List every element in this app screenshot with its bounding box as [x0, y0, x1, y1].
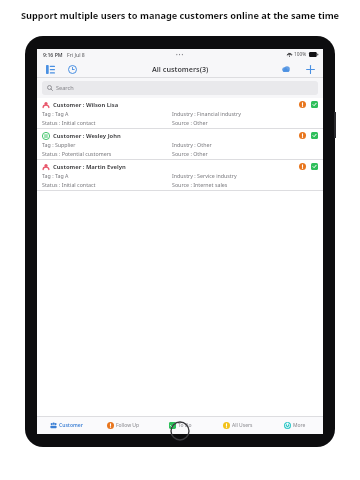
staticText: Customer	[59, 422, 83, 429]
button[interactable]: Done	[311, 101, 318, 108]
staticText: More	[293, 422, 306, 429]
staticText: Status : Potential customers	[42, 150, 112, 157]
staticText: Source : Other	[172, 150, 208, 157]
button[interactable]: Customer : Wilson Lisa	[37, 98, 323, 129]
button[interactable]: Sidebar	[42, 61, 58, 77]
staticText: Industry : Service industry	[172, 172, 237, 179]
staticText: All Users	[232, 422, 253, 429]
staticText: Industry : Financial industry	[172, 110, 241, 117]
staticText: Tag : Supplier	[42, 141, 76, 148]
staticText: Tag : Tag A	[42, 172, 69, 179]
staticText: Search	[56, 84, 74, 92]
button[interactable]: To Do	[152, 417, 209, 434]
button[interactable]: All Users	[209, 417, 266, 434]
staticText: Source : Internet sales	[172, 181, 228, 188]
staticText: 9:16 PM	[43, 51, 63, 58]
staticText: Status : Initial contact	[42, 119, 96, 126]
staticText: Customer : Wilson Lisa	[53, 101, 119, 109]
staticText: Customer : Wesley John	[53, 132, 121, 140]
button[interactable]: Search	[42, 81, 318, 95]
staticText: Industry : Other	[172, 141, 212, 148]
staticText: Fri Jul 8	[67, 51, 85, 58]
button[interactable]: Follow Up	[95, 417, 152, 434]
button[interactable]: More	[266, 417, 323, 434]
button[interactable]: Cloud sync	[278, 61, 294, 77]
button[interactable]: Customer : Martin Evelyn	[37, 160, 323, 191]
staticText: Customer : Martin Evelyn	[53, 163, 126, 171]
staticText: All customers(3)	[152, 64, 209, 74]
staticText: • • •	[176, 52, 184, 58]
button[interactable]: Home	[169, 420, 191, 442]
button[interactable]: Done	[311, 163, 318, 170]
button[interactable]: Follow up	[299, 132, 306, 139]
staticText: Support multiple users to manage custome…	[21, 9, 340, 22]
button[interactable]: Done	[311, 132, 318, 139]
button[interactable]: Customer : Wesley John	[37, 129, 323, 160]
staticText: Source : Other	[172, 119, 208, 126]
staticText: Tag : Tag A	[42, 110, 69, 117]
staticText: To Do	[178, 422, 192, 429]
button[interactable]: Follow up	[299, 101, 306, 108]
staticText: Status : Initial contact	[42, 181, 96, 188]
button[interactable]: Follow up	[299, 163, 306, 170]
staticText: Follow Up	[116, 422, 140, 429]
button[interactable]: Recent	[64, 61, 80, 77]
button[interactable]: Add customer	[302, 61, 318, 77]
button[interactable]: Customer	[37, 417, 95, 434]
staticText: 100%	[294, 51, 307, 58]
